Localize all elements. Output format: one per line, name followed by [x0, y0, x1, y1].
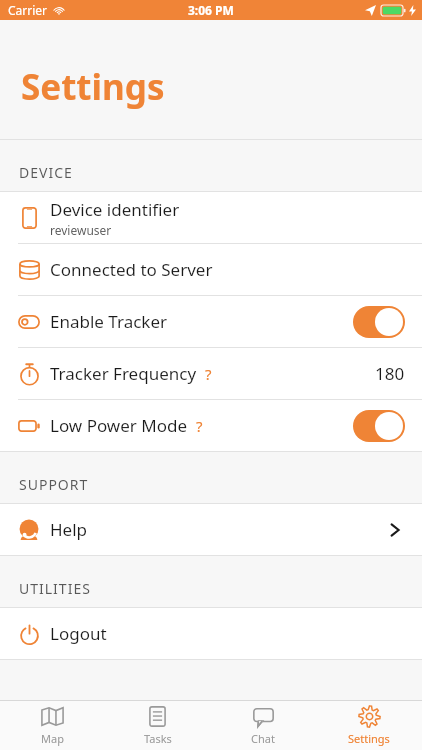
button[interactable]: Tasks: [105, 701, 210, 750]
button[interactable]: Help: [0, 504, 422, 555]
other: Open: [385, 520, 405, 540]
staticText: Device identifier: [50, 198, 180, 221]
button[interactable]: Map: [0, 701, 105, 750]
staticText: Carrier: [8, 2, 48, 18]
button[interactable]: Settings: [316, 701, 422, 750]
staticText: ?: [205, 364, 212, 384]
staticText: Settings: [348, 731, 390, 746]
button[interactable]: Logout: [0, 608, 422, 659]
button[interactable]: Toggle: [353, 306, 405, 338]
staticText: Connected to Server: [50, 258, 213, 281]
staticText: Logout: [50, 622, 107, 645]
staticText: UTILITIES: [19, 579, 91, 598]
staticText: 3:06 PM: [188, 2, 234, 18]
staticText: SUPPORT: [19, 475, 89, 494]
staticText: Map: [41, 731, 64, 746]
button[interactable]: Connected to Server: [0, 244, 422, 295]
staticText: DEVICE: [19, 163, 73, 182]
button[interactable]: Enable Tracker: [0, 296, 422, 347]
button[interactable]: Low Power Mode: [0, 400, 422, 451]
button[interactable]: Device identifier: [0, 192, 422, 243]
button[interactable]: Tracker Frequency: [0, 348, 422, 399]
button[interactable]: Chat: [210, 701, 316, 750]
staticText: Tasks: [144, 731, 172, 746]
button[interactable]: Toggle: [353, 410, 405, 442]
staticText: Tracker Frequency: [50, 362, 197, 385]
staticText: Enable Tracker: [50, 310, 168, 333]
staticText: Settings: [21, 63, 165, 111]
staticText: reviewuser: [50, 222, 112, 238]
staticText: Low Power Mode: [50, 414, 188, 437]
staticText: Chat: [251, 731, 275, 746]
staticText: Help: [50, 518, 88, 541]
staticText: ?: [196, 416, 203, 436]
staticText: 180: [375, 362, 405, 385]
